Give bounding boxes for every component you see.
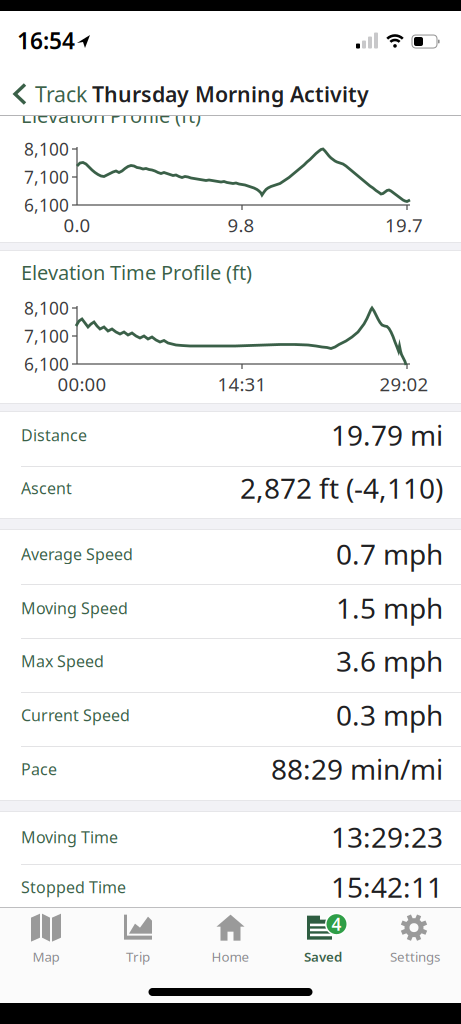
staticText: Saved [304, 948, 342, 965]
staticText: 00:00 [57, 372, 106, 396]
staticText: Map [32, 948, 59, 965]
staticText: 1.5 mph [336, 589, 443, 627]
staticText: Max Speed [21, 650, 104, 672]
staticText: Home [211, 948, 249, 965]
staticText: Thursday Morning Activity [92, 80, 369, 108]
staticText: 6,100 [24, 352, 69, 375]
staticText: Moving Speed [21, 597, 128, 619]
staticText: 29:02 [379, 372, 428, 396]
staticText: 6,100 [24, 193, 69, 216]
button[interactable]: 4 [277, 910, 369, 968]
staticText: Stopped Time [21, 876, 126, 898]
button[interactable]: Trip [92, 910, 184, 968]
staticText: 3.6 mph [336, 642, 443, 680]
staticText: 7,100 [24, 324, 69, 347]
staticText: 88:29 min/mi [271, 750, 443, 788]
button[interactable]: Map [0, 910, 92, 968]
staticText: 4 [331, 913, 341, 936]
staticText: 16:54 [17, 25, 75, 55]
staticText: Elevation Time Profile (ft) [21, 259, 252, 286]
staticText: 19.7 [385, 213, 423, 237]
staticText: 8,100 [24, 137, 69, 160]
staticText: 14:31 [217, 372, 266, 396]
staticText: Ascent [21, 477, 72, 499]
staticText: 19.79 mi [331, 416, 443, 454]
staticText: Track [35, 80, 87, 108]
staticText: Pace [21, 758, 57, 780]
staticText: 15:42:11 [331, 868, 443, 906]
staticText: 8,100 [24, 296, 69, 319]
staticText: 2,872 ft (-4,110) [240, 469, 443, 507]
staticText: Settings [390, 948, 440, 965]
staticText: 0.7 mph [336, 535, 443, 573]
button[interactable]: Settings [369, 910, 461, 968]
staticText: Moving Time [21, 826, 118, 848]
button[interactable]: Track [13, 80, 87, 108]
staticText: Current Speed [21, 704, 130, 726]
staticText: Elevation Profile (ft) [21, 102, 201, 129]
staticText: Trip [126, 948, 150, 965]
staticText: 7,100 [24, 165, 69, 188]
staticText: Average Speed [21, 543, 133, 565]
staticText: 13:29:23 [331, 818, 443, 856]
button[interactable]: Home [184, 910, 276, 968]
staticText: 9.8 [227, 213, 254, 237]
staticText: 0.0 [63, 213, 90, 237]
staticText: Distance [21, 424, 87, 446]
staticText: 0.3 mph [336, 696, 443, 734]
